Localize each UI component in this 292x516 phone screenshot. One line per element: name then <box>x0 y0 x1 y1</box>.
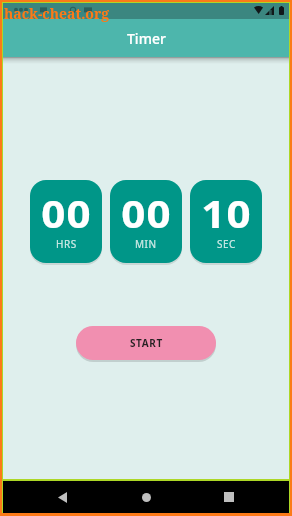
button[interactable]: 00 <box>110 180 182 263</box>
staticText: HRS <box>56 237 77 251</box>
staticText: SEC <box>217 237 236 251</box>
staticText: MIN <box>135 237 157 251</box>
staticText: 10 <box>201 188 252 238</box>
staticText: 00 <box>121 188 172 238</box>
button[interactable]: 00 <box>30 180 102 263</box>
staticText: Timer <box>127 29 166 48</box>
staticText: START <box>130 336 163 350</box>
button[interactable]: Recent apps <box>209 481 249 513</box>
staticText: 00 <box>41 188 92 238</box>
button[interactable]: 10 <box>190 180 262 263</box>
button[interactable]: Back <box>43 481 83 513</box>
button[interactable]: START <box>76 326 216 360</box>
staticText: hack-cheat.org <box>4 4 110 23</box>
button[interactable]: Home <box>126 481 166 513</box>
